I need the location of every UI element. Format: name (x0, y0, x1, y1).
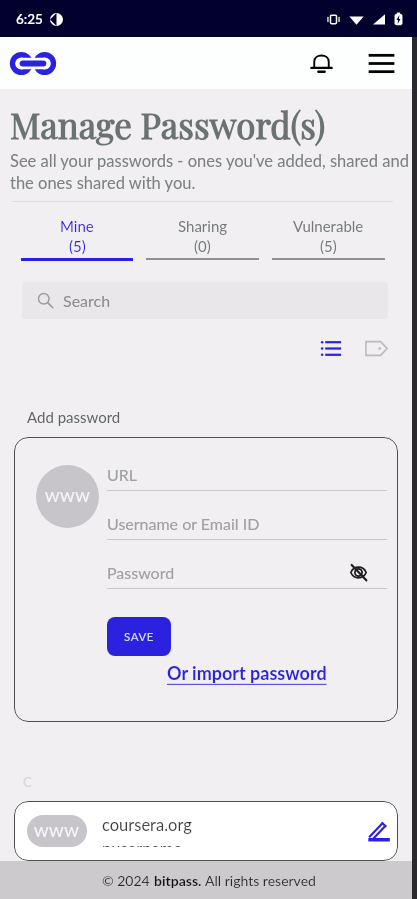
staticText: © 2024 (102, 872, 154, 889)
button[interactable]: Show password (350, 564, 367, 581)
staticText: SAVE (124, 630, 155, 644)
button[interactable]: List view (315, 333, 345, 363)
staticText: Manage Password(s) (10, 101, 326, 148)
button[interactable]: Search (22, 282, 388, 319)
staticText: Username or Email ID (107, 514, 387, 533)
staticText: (0) (194, 237, 211, 255)
button[interactable]: Vulnerable (272, 217, 385, 260)
staticText: C (23, 774, 32, 790)
button[interactable]: Or import password (167, 662, 327, 684)
staticText: (5) (69, 237, 86, 255)
staticText: Or import password (167, 662, 327, 684)
button[interactable]: Notifications (301, 43, 341, 83)
button[interactable]: WWW (14, 801, 398, 861)
button[interactable]: bitpass home (11, 52, 55, 75)
button[interactable]: Edit (367, 820, 389, 842)
button[interactable]: Sharing (146, 217, 259, 260)
button[interactable]: SAVE (107, 617, 171, 656)
staticText: WWW (45, 488, 91, 505)
staticText: Mine (60, 217, 94, 235)
staticText: pusername (102, 839, 183, 847)
staticText: coursera.org (102, 815, 192, 835)
button[interactable]: Tag view (361, 333, 391, 363)
staticText: 6:25 (16, 11, 43, 27)
staticText: Sharing (178, 217, 228, 235)
staticText: Password (107, 563, 350, 582)
staticText: Vulnerable (293, 217, 364, 235)
staticText: Search (63, 291, 111, 310)
staticText: (5) (320, 237, 337, 255)
staticText: URL (107, 465, 387, 484)
staticText: Add password (27, 408, 121, 426)
staticText: WWW (34, 823, 80, 840)
button[interactable]: Menu (361, 43, 401, 83)
staticText: All rights reserved (202, 872, 316, 889)
staticText: bitpass. (154, 872, 202, 889)
button[interactable]: Mine (21, 217, 133, 261)
staticText: See all your passwords - ones you've add… (10, 151, 417, 193)
